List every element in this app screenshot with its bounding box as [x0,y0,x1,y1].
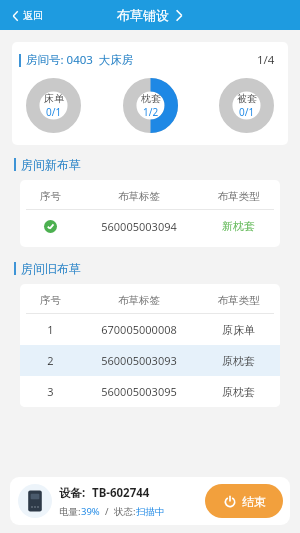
staticText: 布草类型 [197,190,280,203]
staticText: 3 [20,384,81,399]
staticText: 扫描中 [136,506,165,518]
staticText: 原枕套 [197,385,280,399]
staticText: 39% [81,505,100,518]
staticText: 被套 [237,92,257,105]
staticText: TB-602744 [92,485,150,501]
button[interactable]: 枕套 [123,78,178,133]
staticText: 新枕套 [197,219,280,233]
other: Device [18,484,52,518]
staticText: 返回 [23,9,43,22]
staticText: 1/4 [257,52,275,68]
staticText: 670005000008 [81,322,197,337]
staticText: 房间旧布草 [21,261,81,276]
button[interactable]: 被套 [219,78,274,133]
staticText: 布草标签 [81,294,197,307]
button[interactable]: 1 [20,314,280,345]
staticText: 560005003095 [81,384,197,399]
staticText: 0/1 [239,105,255,119]
other: Completed [44,220,57,233]
staticText: 0/1 [46,105,62,119]
staticText: 560005003094 [81,219,197,234]
staticText: 原枕套 [197,354,280,368]
staticText: 房间号: 0403 大床房 [26,52,134,68]
button[interactable]: 返回 [8,7,47,24]
staticText: 序号 [20,294,81,307]
staticText: 布草标签 [81,190,197,203]
button[interactable]: 2 [20,345,280,376]
staticText: 布草类型 [197,294,280,307]
staticText: 原床单 [197,323,280,337]
staticText: 结束 [242,494,266,509]
staticText: 2 [20,353,81,368]
staticText: 1 [20,322,81,337]
staticText: 房间新布草 [21,157,81,172]
staticText: / [100,505,114,518]
button[interactable]: 床单 [26,78,81,133]
staticText: 床单 [44,92,64,105]
staticText: 布草铺设 [117,7,169,23]
staticText: 设备: [59,485,86,501]
button[interactable]: Completed [20,210,280,242]
staticText: 电量: [59,505,81,518]
button[interactable]: 房间号: 0403 大床房 [12,42,288,145]
staticText: 1/2 [143,105,159,119]
button[interactable]: 结束 [205,484,283,518]
staticText: 状态: [114,505,136,518]
staticText: 序号 [20,190,81,203]
staticText: 560005003093 [81,353,197,368]
staticText: 枕套 [141,92,161,105]
button[interactable]: 3 [20,376,280,407]
